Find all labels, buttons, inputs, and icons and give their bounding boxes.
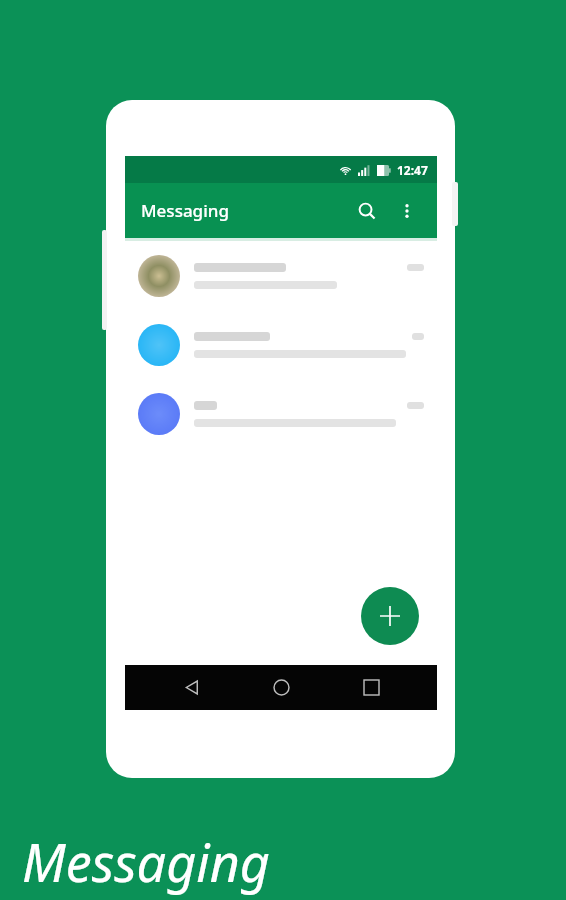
staticText: Messaging [22,826,270,897]
button[interactable]: Search [347,191,387,231]
button[interactable] [125,379,437,448]
button[interactable]: More options [387,191,427,231]
staticText: Messaging [141,199,229,222]
button[interactable] [125,241,437,310]
button[interactable]: Home [258,665,304,710]
button[interactable]: New conversation [361,587,419,645]
button[interactable]: Recent apps [348,665,394,710]
button[interactable]: Back [169,665,215,710]
staticText: 12:47 [397,162,428,178]
button[interactable] [125,310,437,379]
